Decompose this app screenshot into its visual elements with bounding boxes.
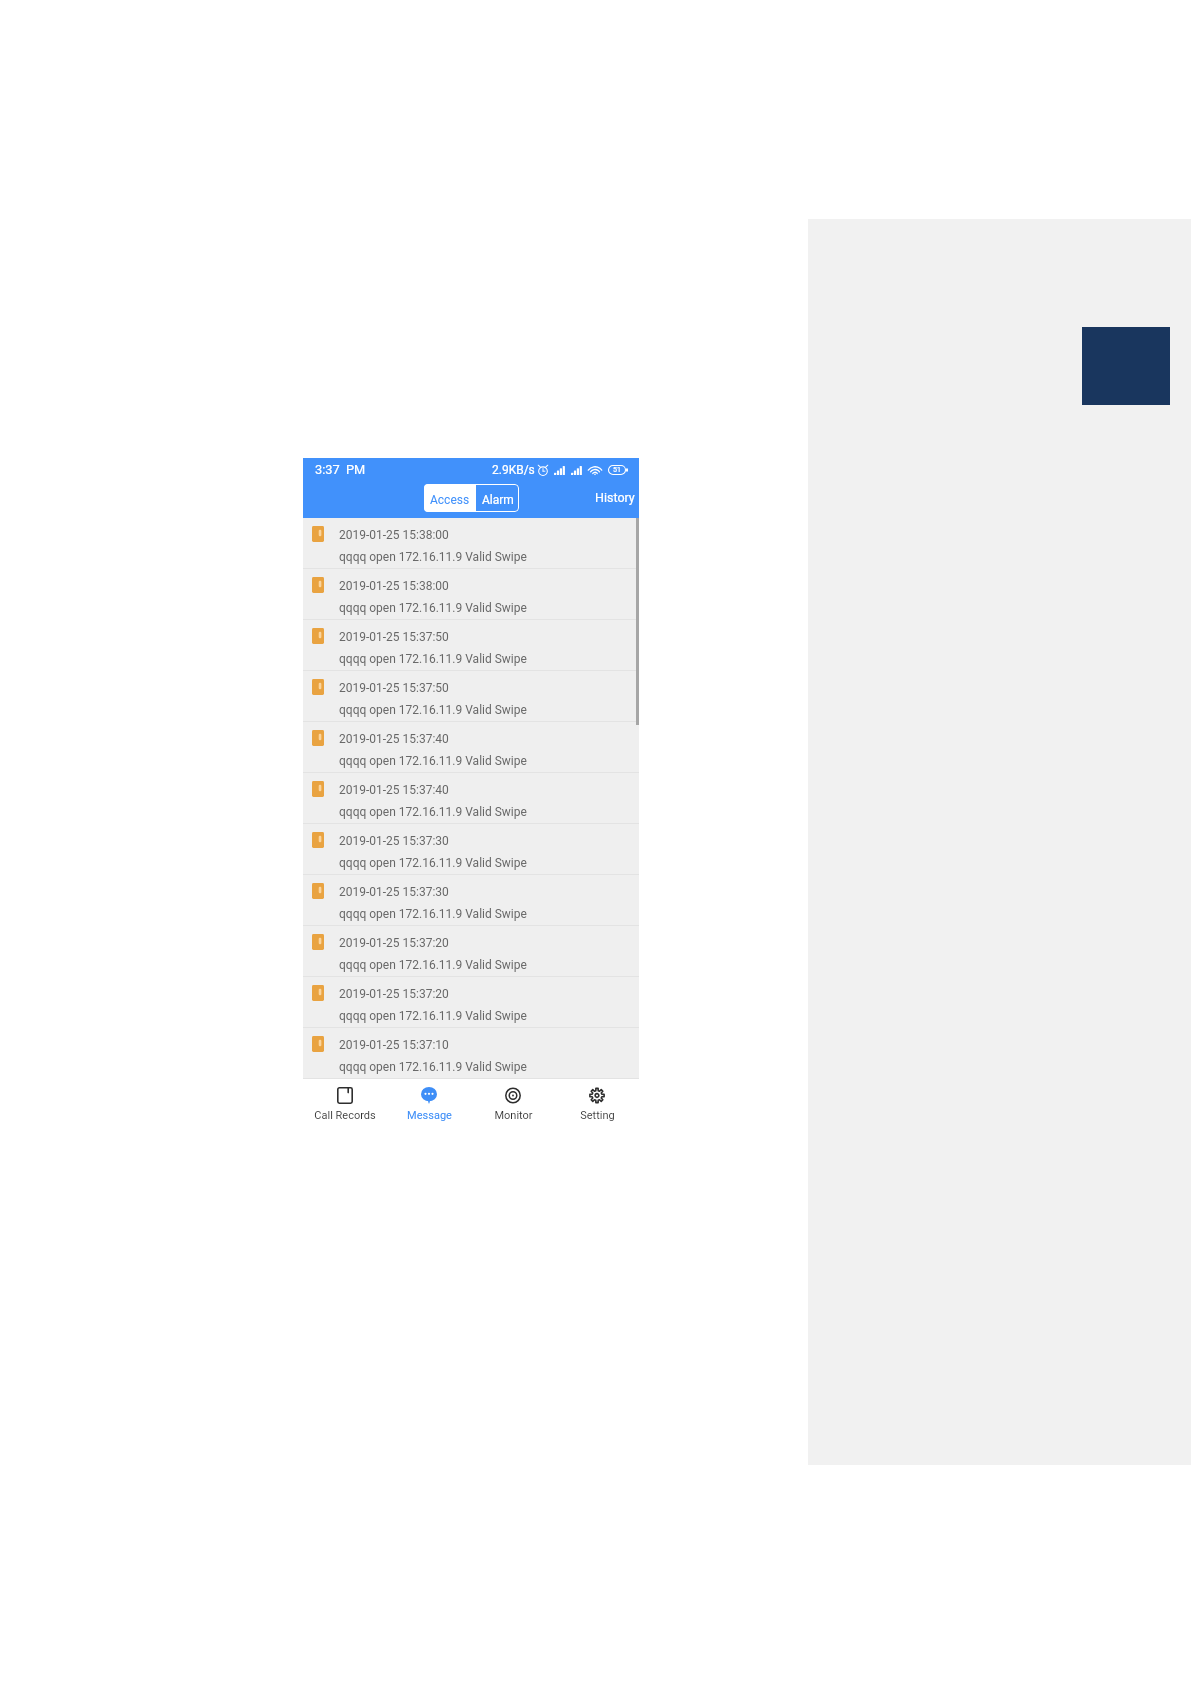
button[interactable]: 2019-01-25 15:37:40 (303, 773, 639, 824)
staticText: Message (407, 1109, 452, 1122)
button[interactable]: 2019-01-25 15:37:50 (303, 620, 639, 671)
other: Monitor (505, 1087, 521, 1104)
staticText: 2019-01-25 15:38:00 (339, 528, 449, 542)
staticText: Setting (580, 1109, 615, 1122)
staticText: 3:37 PM (315, 462, 366, 477)
staticText: qqqq open 172.16.11.9 Valid Swipe (339, 652, 527, 666)
button[interactable]: Monitor (471, 1079, 555, 1133)
other: Setting (589, 1087, 605, 1104)
staticText: Alarm (482, 493, 514, 507)
button[interactable]: 2019-01-25 15:37:20 (303, 977, 639, 1028)
button[interactable]: Setting (555, 1079, 639, 1133)
button[interactable]: 2019-01-25 15:37:10 (303, 1028, 639, 1079)
button[interactable]: Message (387, 1079, 471, 1133)
button[interactable]: 2019-01-25 15:37:50 (303, 671, 639, 722)
staticText: qqqq open 172.16.11.9 Valid Swipe (339, 907, 527, 921)
button[interactable]: 2019-01-25 15:37:30 (303, 824, 639, 875)
staticText: 2019-01-25 15:37:40 (339, 732, 449, 746)
button[interactable]: 2019-01-25 15:37:30 (303, 875, 639, 926)
staticText: qqqq open 172.16.11.9 Valid Swipe (339, 805, 527, 819)
other: Call Records (337, 1087, 353, 1104)
staticText: 2019-01-25 15:37:20 (339, 987, 449, 1001)
staticText: qqqq open 172.16.11.9 Valid Swipe (339, 1060, 527, 1074)
button[interactable]: History (595, 490, 635, 505)
staticText: qqqq open 172.16.11.9 Valid Swipe (339, 601, 527, 615)
button[interactable]: 2019-01-25 15:37:40 (303, 722, 639, 773)
button[interactable]: Alarm (476, 484, 519, 512)
staticText: 2019-01-25 15:37:50 (339, 681, 449, 695)
staticText: 2019-01-25 15:37:50 (339, 630, 449, 644)
button[interactable]: Access (424, 484, 476, 512)
staticText: Monitor (494, 1109, 533, 1122)
button[interactable]: 2019-01-25 15:37:20 (303, 926, 639, 977)
staticText: Call Records (314, 1109, 376, 1122)
staticText: 2.9KB/s (492, 463, 535, 477)
button[interactable]: 2019-01-25 15:38:00 (303, 569, 639, 620)
button[interactable]: Call Records (303, 1079, 387, 1133)
other: Message (421, 1087, 437, 1104)
staticText: 2019-01-25 15:37:30 (339, 834, 449, 848)
staticText: qqqq open 172.16.11.9 Valid Swipe (339, 754, 527, 768)
staticText: Access (430, 493, 470, 507)
staticText: History (595, 490, 635, 505)
staticText: qqqq open 172.16.11.9 Valid Swipe (339, 550, 527, 564)
staticText: 2019-01-25 15:37:40 (339, 783, 449, 797)
staticText: qqqq open 172.16.11.9 Valid Swipe (339, 958, 527, 972)
staticText: 2019-01-25 15:37:30 (339, 885, 449, 899)
staticText: 2019-01-25 15:38:00 (339, 579, 449, 593)
button[interactable]: 2019-01-25 15:38:00 (303, 518, 639, 569)
staticText: qqqq open 172.16.11.9 Valid Swipe (339, 1009, 527, 1023)
staticText: 2019-01-25 15:37:10 (339, 1038, 449, 1052)
staticText: qqqq open 172.16.11.9 Valid Swipe (339, 856, 527, 870)
staticText: 2019-01-25 15:37:20 (339, 936, 449, 950)
staticText: qqqq open 172.16.11.9 Valid Swipe (339, 703, 527, 717)
staticText: 51 (613, 466, 621, 474)
